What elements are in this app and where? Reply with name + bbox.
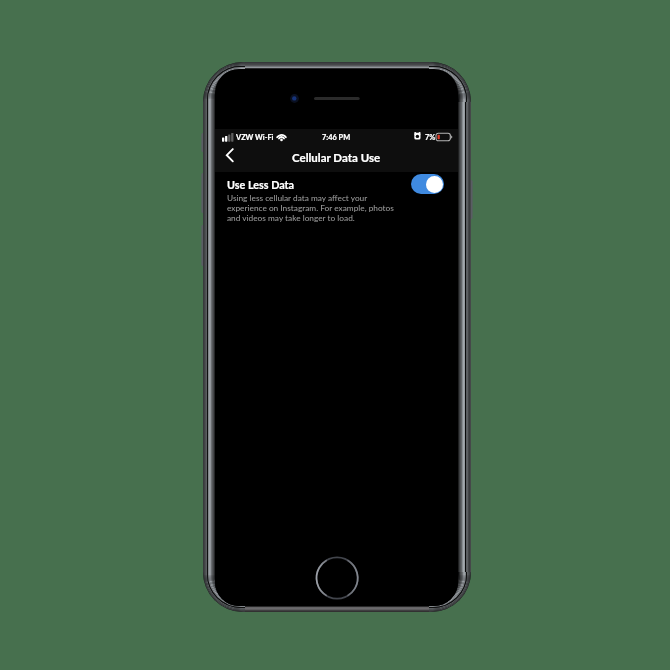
button[interactable]: Back (218, 147, 242, 171)
staticText: 7:46 PM (322, 133, 351, 142)
staticText: 7% (425, 133, 436, 142)
staticText: VZW Wi-Fi (236, 133, 274, 142)
staticText: Use Less Data (227, 178, 295, 191)
button[interactable]: Use Less Data toggle (411, 174, 444, 194)
staticText: and videos may take longer to load. (227, 213, 355, 223)
staticText: Using less cellular data may affect your (227, 193, 368, 203)
staticText: Cellular Data Use (292, 151, 381, 165)
staticText: experience on Instagram. For example, ph… (227, 203, 394, 213)
button[interactable]: Use Less Data (227, 178, 403, 223)
